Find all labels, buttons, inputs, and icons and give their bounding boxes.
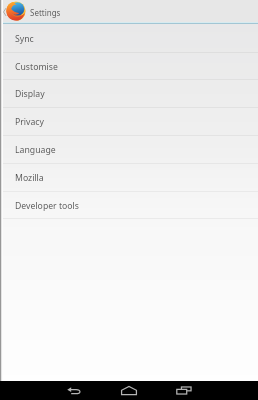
button[interactable]: Language	[0, 136, 258, 164]
button[interactable]: Sync	[0, 24, 258, 53]
staticText: Display	[15, 88, 45, 100]
staticText: Privacy	[15, 116, 44, 128]
button[interactable]: Customise	[0, 53, 258, 80]
staticText: Sync	[15, 33, 34, 45]
staticText: Customise	[15, 61, 58, 73]
button[interactable]: Navigate up	[2, 0, 27, 24]
staticText: Developer tools	[15, 200, 80, 212]
button[interactable]: Home	[118, 381, 140, 400]
button[interactable]: Mozilla	[0, 164, 258, 192]
staticText: Language	[15, 144, 56, 156]
button[interactable]: Privacy	[0, 108, 258, 136]
staticText: Settings	[30, 7, 61, 18]
button[interactable]: Display	[0, 80, 258, 108]
button[interactable]: Developer tools	[0, 192, 258, 219]
button[interactable]: Back	[63, 381, 85, 400]
button[interactable]: Recent apps	[173, 381, 195, 400]
staticText: Mozilla	[15, 172, 44, 184]
